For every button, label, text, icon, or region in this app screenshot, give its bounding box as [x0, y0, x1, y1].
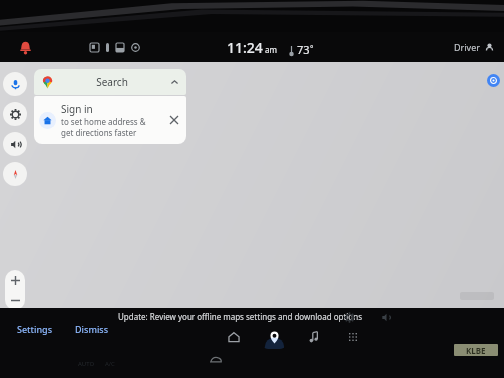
staticText: 73 [297, 42, 310, 57]
button[interactable]: Driver [450, 39, 498, 55]
button[interactable]: Dismiss [72, 322, 112, 336]
button[interactable]: Navigation [262, 325, 286, 349]
staticText: 11:24 [227, 38, 263, 57]
staticText: Search [54, 75, 170, 89]
button[interactable]: Zoom out [5, 290, 25, 310]
button[interactable]: Apps [342, 325, 364, 349]
button[interactable]: Settings [14, 322, 56, 336]
button[interactable]: Media [302, 325, 326, 349]
staticText: Sign in [61, 102, 93, 116]
staticText: am [265, 44, 277, 55]
staticText: get directions faster [61, 127, 137, 138]
staticText: ° [310, 43, 314, 54]
staticText: Dismiss [75, 323, 109, 335]
button[interactable]: Sign in [34, 96, 186, 144]
button[interactable]: Map layers [487, 74, 500, 87]
staticText: to set home address & [61, 116, 146, 127]
button[interactable]: Settings [3, 102, 27, 126]
button[interactable]: Volume [3, 132, 27, 156]
button[interactable]: Zoom in [5, 270, 25, 290]
button[interactable]: Dismiss sign in [166, 112, 182, 128]
staticText: Settings [17, 323, 53, 335]
button[interactable]: Vehicle [206, 350, 226, 370]
staticText: Driver [454, 41, 480, 53]
staticText: Update: Review your offline maps setting… [118, 311, 362, 322]
button[interactable]: Search [34, 69, 186, 95]
staticText: KLBE [466, 345, 486, 356]
staticText: A/C [105, 360, 115, 368]
button[interactable]: Home [222, 325, 246, 349]
button[interactable]: Notifications [14, 36, 36, 58]
button[interactable]: Voice search [3, 72, 27, 96]
button[interactable]: Compass [3, 162, 27, 186]
staticText: AUTO [78, 360, 95, 368]
